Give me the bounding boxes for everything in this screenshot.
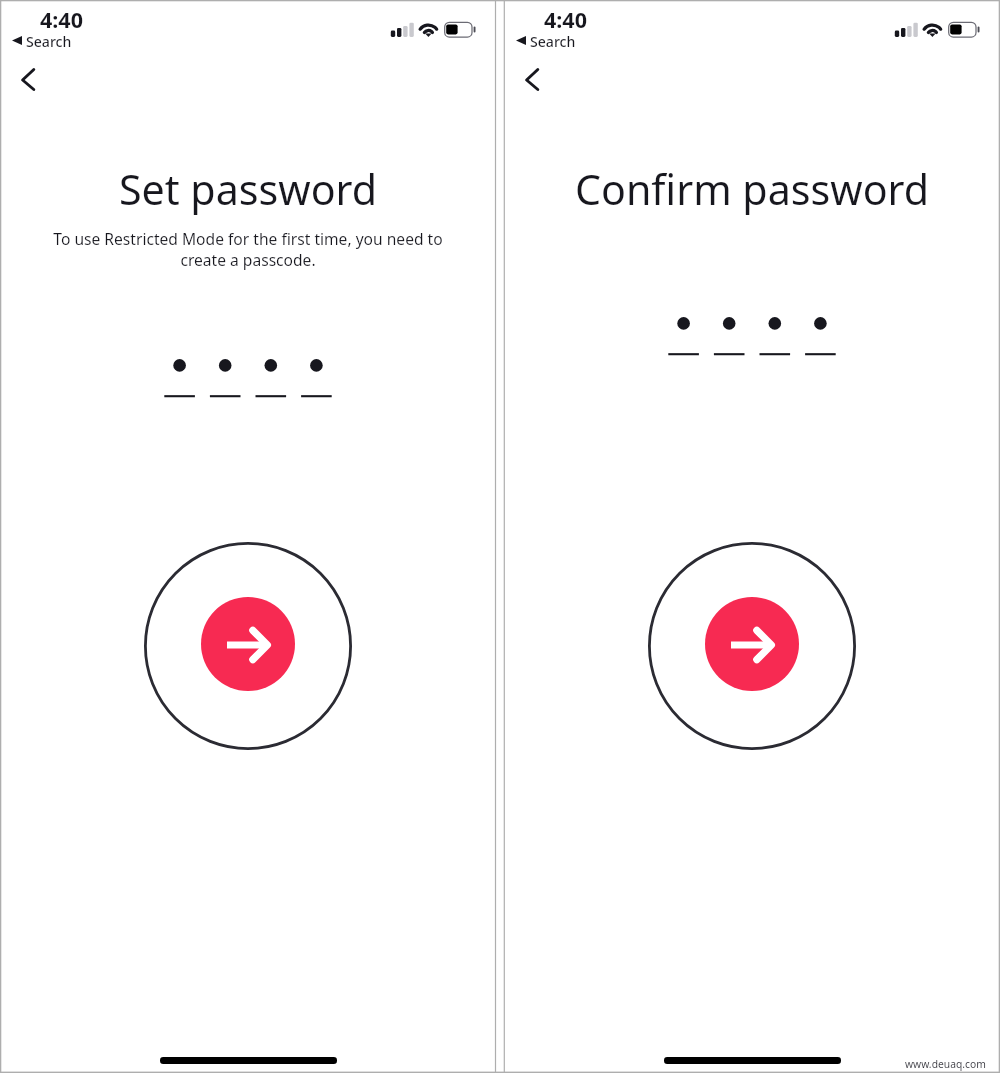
button[interactable]: Back: [519, 63, 555, 99]
staticText: Set password: [0, 161, 496, 217]
button[interactable]: Search: [12, 32, 72, 49]
button[interactable]: Continue: [201, 597, 295, 691]
button[interactable]: Search: [516, 32, 576, 49]
staticText: Confirm password: [504, 161, 1000, 217]
staticText: To use Restricted Mode for the first tim…: [0, 228, 496, 270]
staticText: www.deuaq.com: [905, 1057, 986, 1071]
button[interactable]: Back: [15, 63, 51, 99]
staticText: Search: [530, 32, 576, 49]
button[interactable]: Continue: [705, 597, 799, 691]
staticText: 4:40: [40, 5, 83, 34]
staticText: 4:40: [544, 5, 587, 34]
staticText: Search: [26, 32, 72, 49]
